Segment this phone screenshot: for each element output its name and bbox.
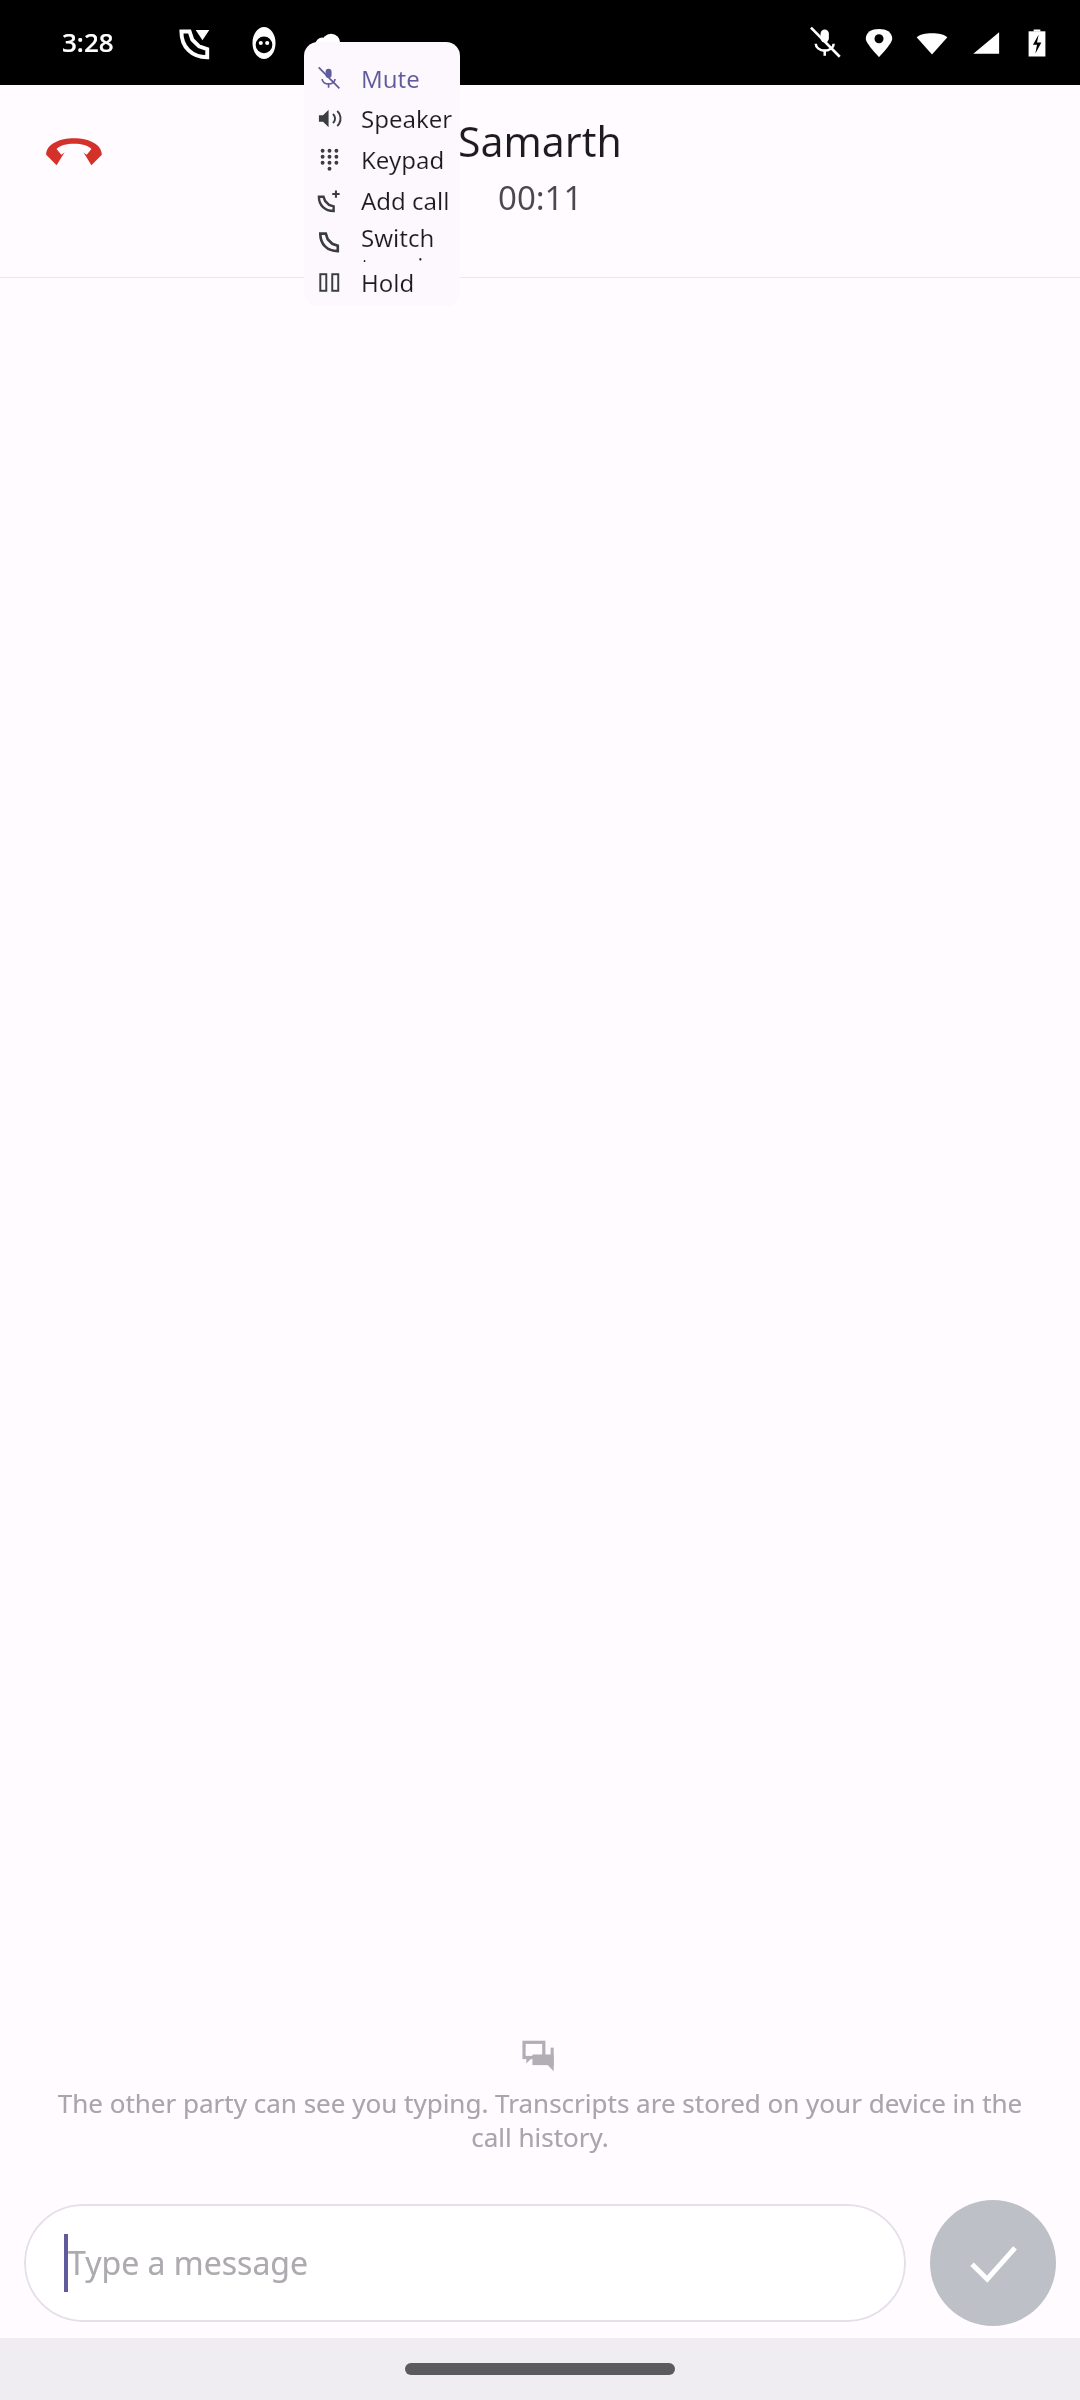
button[interactable]: Keypad — [304, 139, 460, 180]
staticText: The other party can see you typing. Tran… — [52, 2085, 1028, 2154]
staticText: Samarth — [458, 113, 622, 169]
button[interactable]: Speaker — [304, 98, 460, 139]
staticText: Hold — [361, 266, 415, 299]
staticText: Mute — [361, 62, 420, 95]
button[interactable]: Hold — [304, 262, 460, 303]
staticText: Speaker — [361, 102, 453, 135]
button[interactable]: Switch to voice — [304, 221, 460, 262]
staticText: Type a message — [68, 2241, 309, 2285]
staticText: Switch to voice — [361, 221, 460, 262]
button[interactable]: Add call — [304, 180, 460, 221]
staticText: 3:28 — [62, 24, 114, 59]
button[interactable]: End call — [18, 93, 130, 205]
staticText: Keypad — [361, 143, 445, 176]
staticText: 00:11 — [498, 175, 583, 220]
button[interactable]: Type a message — [24, 2204, 906, 2322]
button[interactable]: Send message — [930, 2200, 1056, 2326]
button[interactable]: Mute — [304, 58, 460, 98]
staticText: Add call — [361, 184, 450, 217]
